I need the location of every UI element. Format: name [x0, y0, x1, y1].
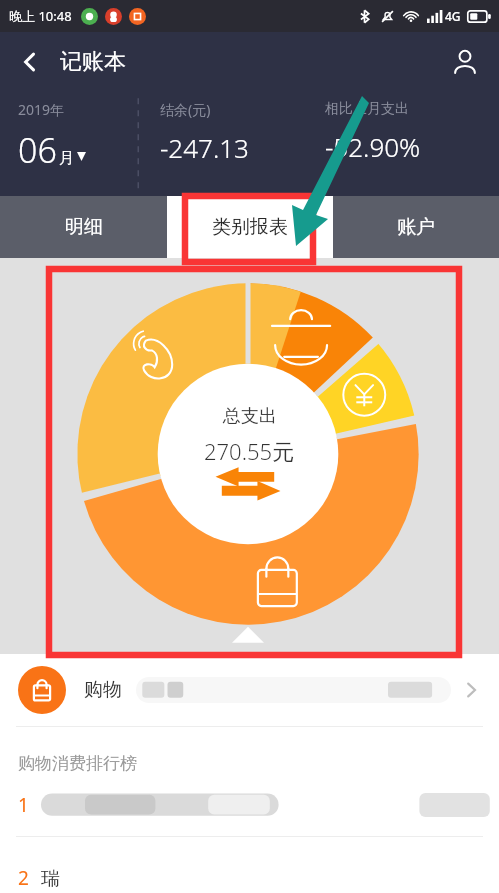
staticText: 类别报表 — [212, 215, 288, 239]
staticText: 明细 — [65, 215, 103, 239]
button[interactable]: Back — [8, 40, 52, 84]
button[interactable]: 购物 — [0, 654, 499, 726]
button[interactable]: 2 — [0, 837, 499, 893]
staticText: 结余(元) — [160, 100, 211, 119]
button[interactable]: 账户 — [333, 196, 499, 258]
staticText: -247.13 — [160, 130, 249, 165]
staticText: 账户 — [397, 215, 435, 239]
button[interactable]: 1 — [0, 774, 499, 836]
staticText: 购物 — [84, 678, 122, 702]
staticText: 2 — [18, 865, 29, 891]
staticText: 06 — [18, 127, 57, 173]
staticText: -52.90% — [325, 129, 421, 164]
staticText: 购物消费排行榜 — [18, 753, 137, 774]
staticText: 相比上月支出 — [325, 100, 409, 118]
button[interactable]: 明细 — [0, 196, 167, 258]
staticText: 瑞 — [41, 867, 60, 891]
staticText: 总支出 — [223, 405, 277, 428]
staticText: 270.55元 — [204, 436, 295, 466]
other: Open — [461, 680, 481, 700]
staticText: 月 — [59, 149, 74, 168]
staticText: 4G — [445, 8, 461, 24]
staticText: 记账本 — [60, 48, 126, 76]
button[interactable]: 类别报表 — [167, 196, 333, 258]
staticText: 1 — [18, 792, 29, 818]
button[interactable]: Account — [443, 40, 487, 84]
staticText: 2019年 — [18, 100, 65, 119]
staticText: 晚上 10:48 — [9, 7, 72, 25]
